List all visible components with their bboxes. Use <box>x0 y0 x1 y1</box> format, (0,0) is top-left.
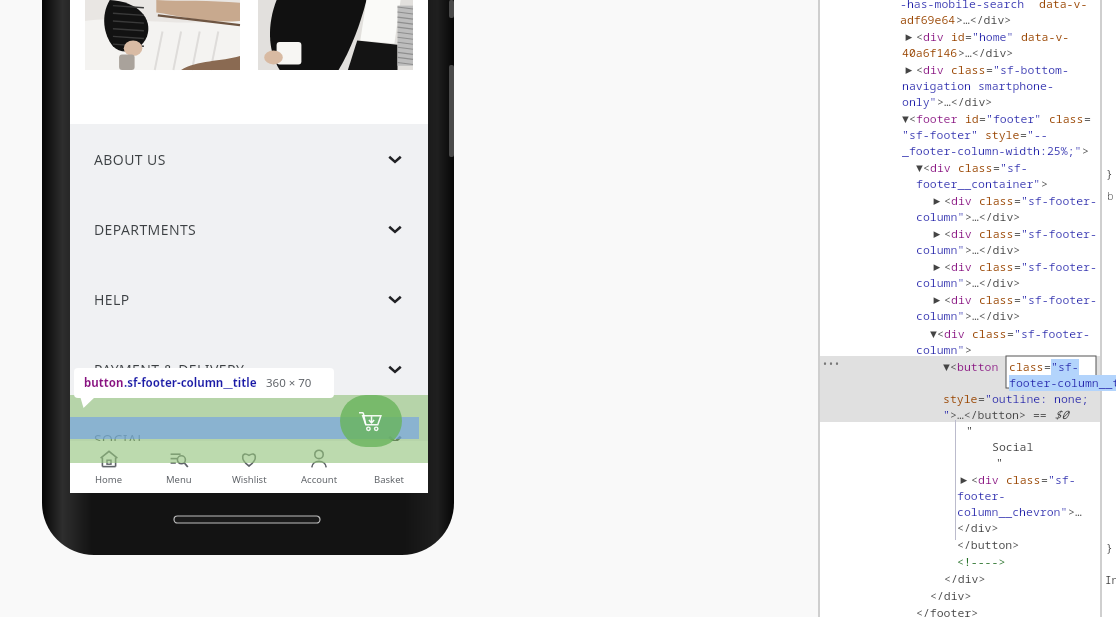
staticText: column" <box>916 308 965 324</box>
staticText: $0 <box>1054 407 1068 423</box>
staticText: adf69e64 <box>900 12 956 28</box>
staticText: b <box>1107 188 1114 203</box>
staticText: column" <box>916 342 965 358</box>
staticText: " <box>996 455 1003 471</box>
staticText: Account <box>301 473 338 486</box>
staticText: = <box>965 29 972 45</box>
button[interactable]: PAYMENT & DELIVERY <box>70 334 428 404</box>
staticText: div <box>944 326 965 342</box>
staticText: < <box>937 326 944 342</box>
staticText: ▼ <box>916 160 923 176</box>
staticText <box>999 359 1006 375</box>
staticText: < <box>944 259 951 275</box>
staticText: "sf-bottom- <box>993 62 1069 78</box>
staticText: " <box>966 423 973 439</box>
staticText: div <box>978 472 999 488</box>
button[interactable]: Menu <box>148 441 210 493</box>
staticText: </div> <box>944 571 986 587</box>
staticText: class <box>972 292 1014 308</box>
staticText: "sf-footer- <box>1014 326 1090 342</box>
staticText: div <box>951 193 972 209</box>
staticText: = <box>1044 359 1051 375</box>
staticText: ••• <box>822 357 840 371</box>
staticText: = <box>979 111 986 127</box>
staticText: "outline: none; <box>985 391 1089 407</box>
staticText: = <box>1014 193 1021 209</box>
staticText: DEPARTMENTS <box>94 220 197 239</box>
staticText: </button> <box>957 537 1020 553</box>
button[interactable]: Add to basket <box>340 395 402 447</box>
button[interactable] <box>258 0 413 70</box>
staticText: Wishlist <box>232 473 267 486</box>
staticText: id <box>958 111 979 127</box>
staticText: footer <box>916 111 958 127</box>
staticText: ▶ <box>930 259 944 275</box>
staticText: = <box>1020 127 1027 143</box>
staticText: div <box>951 226 972 242</box>
button[interactable]: Account <box>288 441 350 493</box>
staticText: In <box>1105 572 1116 587</box>
staticText: class <box>999 472 1041 488</box>
staticText: class <box>972 193 1014 209</box>
staticText: column" <box>916 209 965 225</box>
staticText: < <box>950 359 957 375</box>
staticText: PAYMENT & DELIVERY <box>94 360 245 379</box>
staticText: < <box>923 160 930 176</box>
staticText: < <box>916 62 923 78</box>
button[interactable] <box>85 0 240 70</box>
button[interactable]: DEPARTMENTS <box>70 194 428 264</box>
staticText: </footer> <box>916 605 979 617</box>
staticText: class <box>965 326 1007 342</box>
staticText: "sf-footer- <box>1021 226 1097 242</box>
staticText: footer__container" <box>916 176 1041 192</box>
staticText: < <box>971 472 978 488</box>
button[interactable]: Wishlist <box>218 441 280 493</box>
staticText: ▼ <box>943 359 950 375</box>
staticText: class <box>944 62 986 78</box>
staticText: class <box>972 226 1014 242</box>
staticText: = <box>986 62 993 78</box>
staticText: "sf- <box>1048 472 1076 488</box>
button[interactable]: HELP <box>70 264 428 334</box>
staticText: = <box>1014 226 1021 242</box>
button[interactable]: Home <box>78 441 140 493</box>
staticText: "sf- <box>1000 160 1028 176</box>
button[interactable]: ABOUT US <box>70 124 428 194</box>
staticText: < <box>916 29 923 45</box>
staticText: footer- <box>957 488 1006 504</box>
staticText: <!----> <box>957 554 1006 570</box>
staticText: -has-mobile-search <box>900 0 1025 12</box>
staticText: data-v- <box>1039 0 1088 12</box>
staticText: data-v- <box>1014 29 1070 45</box>
staticText: </div> <box>930 588 972 604</box>
staticText: >…</div> <box>958 45 1014 61</box>
staticText: > <box>965 342 972 358</box>
staticText: "sf-footer- <box>1021 259 1097 275</box>
staticText: button <box>84 375 124 391</box>
staticText: >…</button> <box>950 407 1026 423</box>
staticText: ▶ <box>902 29 916 45</box>
staticText: SOCIAL <box>94 430 145 449</box>
staticText: "sf-footer" <box>902 127 978 143</box>
staticText: == <box>1026 407 1054 423</box>
staticText: "-- <box>1027 127 1048 143</box>
staticText: "sf-footer- <box>1021 292 1097 308</box>
staticText: = <box>993 160 1000 176</box>
staticText: "sf-footer- <box>1021 193 1097 209</box>
staticText: 40a6f146 <box>902 45 958 61</box>
staticText: >…</div> <box>965 209 1021 225</box>
button[interactable]: Basket <box>358 441 420 493</box>
staticText: class <box>972 259 1014 275</box>
staticText: >…</div> <box>965 308 1021 324</box>
staticText: style <box>943 391 978 407</box>
staticText: ▼ <box>902 111 909 127</box>
staticText: < <box>944 292 951 308</box>
button[interactable]: SOCIAL <box>70 404 428 474</box>
staticText: < <box>909 111 916 127</box>
staticText: ▶ <box>930 193 944 209</box>
staticText: < <box>944 193 951 209</box>
staticText: class <box>1042 111 1084 127</box>
staticText: </div> <box>957 520 999 536</box>
staticText: class <box>1009 359 1044 375</box>
